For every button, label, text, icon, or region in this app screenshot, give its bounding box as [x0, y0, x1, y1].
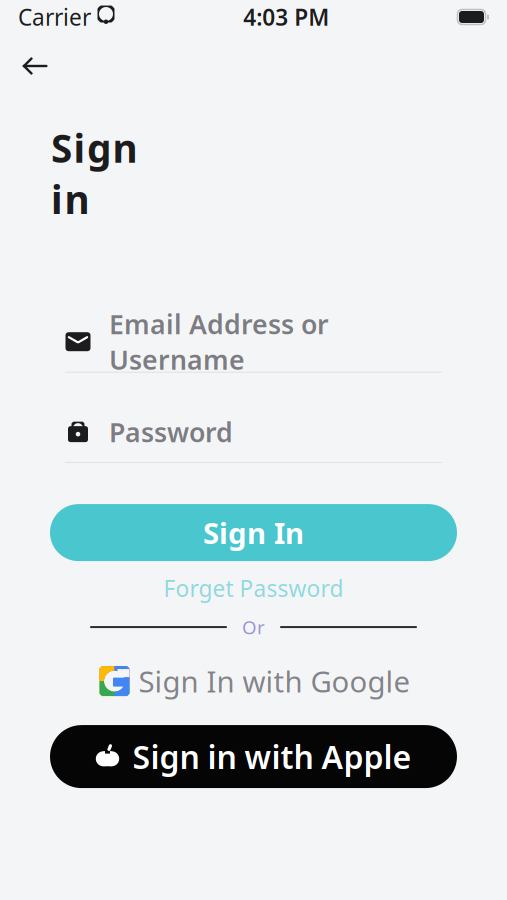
button[interactable]: Sign In with Google — [96, 659, 410, 703]
staticText: 4:03 PM — [243, 2, 329, 32]
button[interactable]: Sign In — [50, 504, 457, 561]
staticText: Password — [109, 414, 233, 450]
staticText: Or — [242, 615, 265, 639]
button[interactable]: Back — [12, 44, 58, 88]
staticText: Sign in with Apple — [132, 735, 411, 778]
staticText: Sign In with Google — [138, 662, 410, 701]
staticText: Sign in — [51, 122, 137, 225]
staticText: Forget Password — [163, 573, 343, 603]
button[interactable]: Sign in with Apple — [50, 725, 457, 788]
button[interactable]: Forget Password — [163, 576, 343, 600]
staticText: Carrier — [18, 2, 91, 32]
staticText: Sign In — [203, 513, 304, 552]
staticText: Email Address or Username — [109, 306, 329, 377]
